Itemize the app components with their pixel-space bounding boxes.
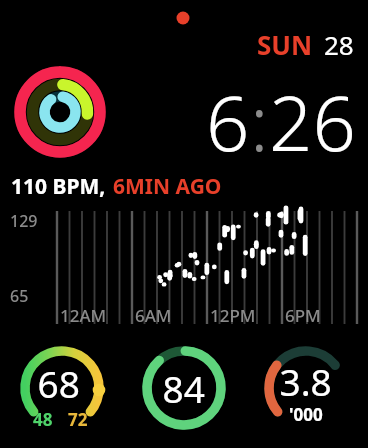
button[interactable]: Time 6:26, Sunday 28 (172, 16, 356, 152)
button[interactable]: Gauge 84 (144, 348, 224, 434)
button[interactable]: Heart rate chart, 110 BPM (0, 166, 368, 326)
button[interactable]: Steps 3.8 thousand (266, 348, 346, 434)
button[interactable]: Blood oxygen 68 (22, 348, 102, 434)
button[interactable]: Activity rings (14, 66, 106, 158)
